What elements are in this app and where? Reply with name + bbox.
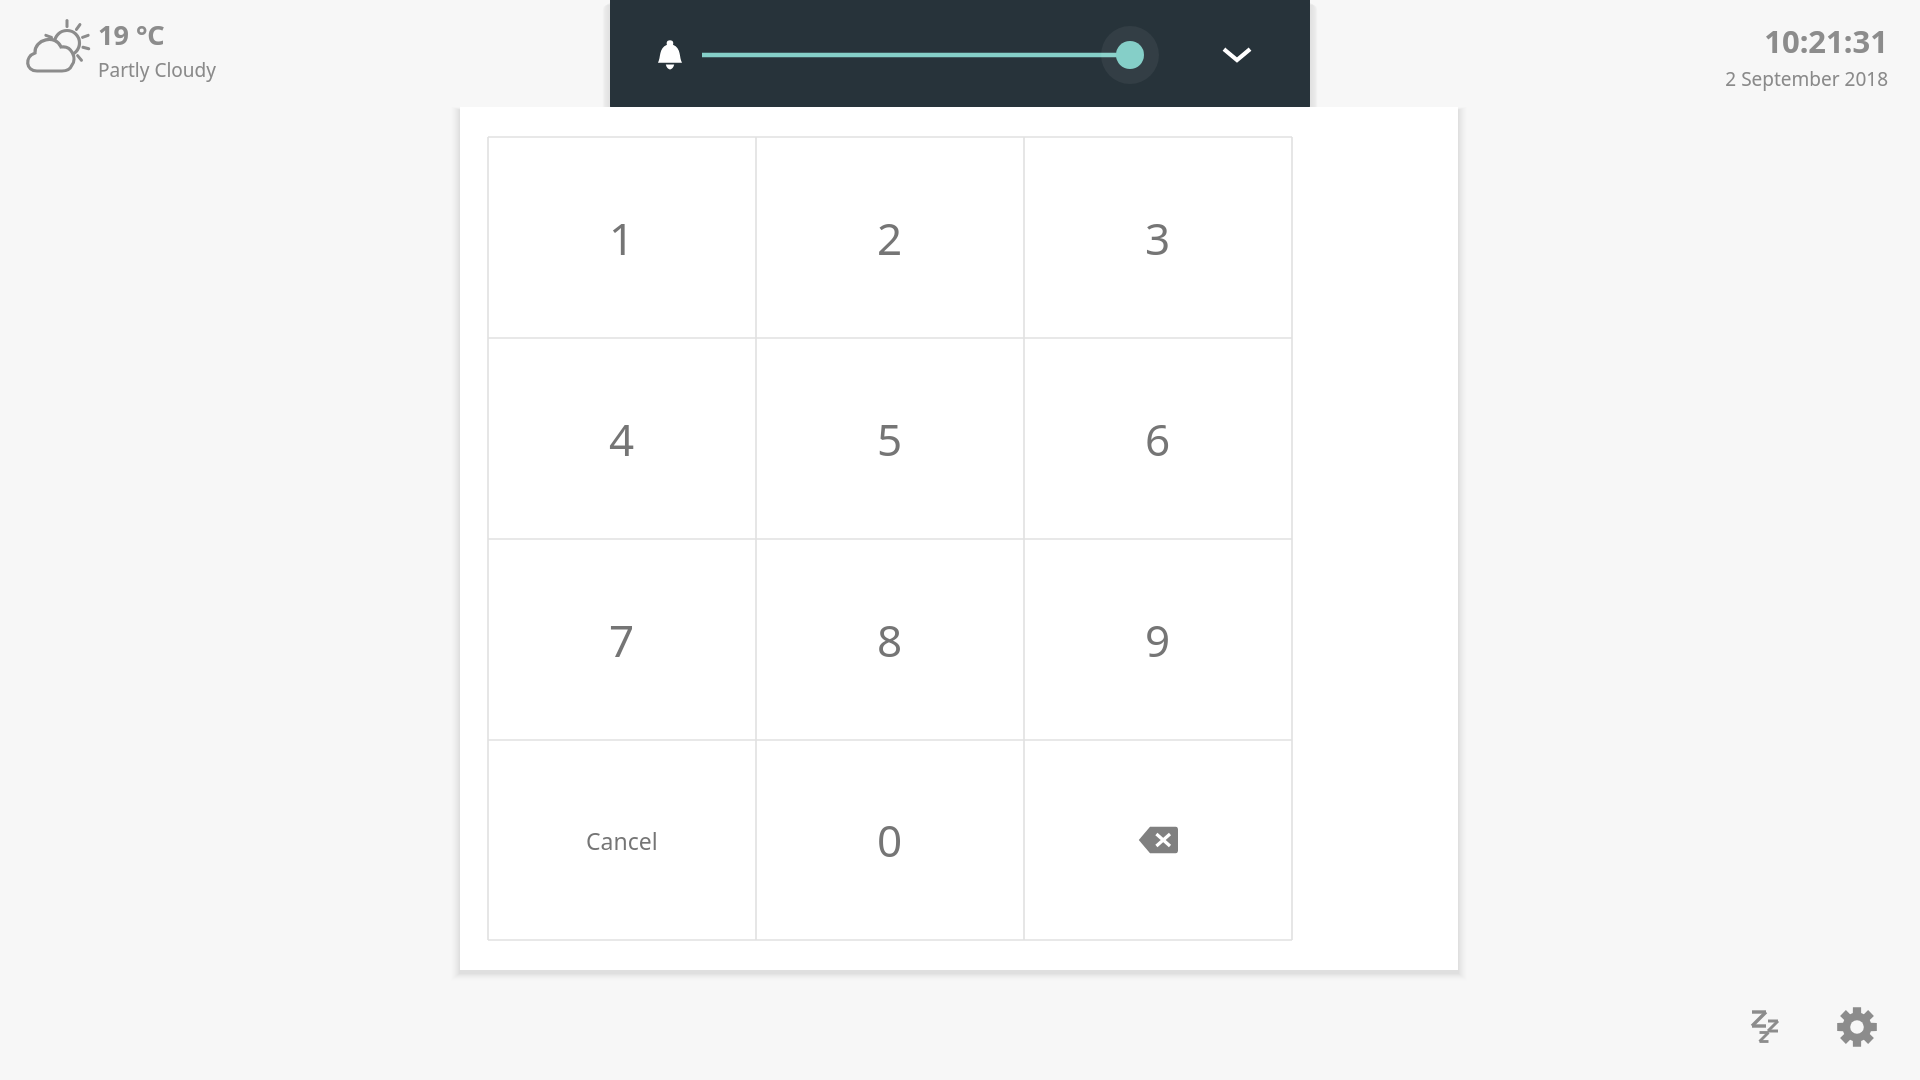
staticText: 6 xyxy=(1145,409,1171,469)
button[interactable]: 0 xyxy=(756,740,1024,940)
button[interactable]: Notifications xyxy=(642,27,698,83)
button[interactable]: 3 xyxy=(1024,137,1292,338)
staticText: 8 xyxy=(877,610,903,670)
button[interactable]: Backspace xyxy=(1024,740,1292,940)
staticText: 10:21:31 xyxy=(1764,20,1888,62)
staticText: 4 xyxy=(609,409,635,469)
button[interactable]: 1 xyxy=(488,137,756,338)
button[interactable]: 8 xyxy=(756,539,1024,740)
staticText: Cancel xyxy=(586,825,658,856)
button[interactable]: 2 xyxy=(756,137,1024,338)
staticText: 3 xyxy=(1145,208,1171,268)
button[interactable]: 4 xyxy=(488,338,756,539)
staticText: 19 °C xyxy=(98,16,165,53)
button[interactable]: 7 xyxy=(488,539,756,740)
button[interactable]: 10:21:31 xyxy=(1721,16,1892,92)
staticText: Partly Cloudy xyxy=(98,57,216,83)
button[interactable]: 19 °C xyxy=(18,14,220,85)
button[interactable]: 6 xyxy=(1024,338,1292,539)
staticText: 0 xyxy=(877,810,903,870)
staticText: 9 xyxy=(1145,610,1171,670)
button[interactable]: Sleep xyxy=(1736,996,1798,1058)
button[interactable]: Settings xyxy=(1826,996,1888,1058)
staticText: 5 xyxy=(877,409,903,469)
button[interactable]: Cancel xyxy=(488,740,756,940)
staticText: 2 xyxy=(877,208,903,268)
button[interactable]: 5 xyxy=(756,338,1024,539)
staticText: 2 September 2018 xyxy=(1725,66,1888,92)
button[interactable]: Expand xyxy=(1210,28,1264,82)
staticText: 7 xyxy=(609,610,635,670)
button[interactable]: 9 xyxy=(1024,539,1292,740)
staticText: 1 xyxy=(609,208,635,268)
button[interactable]: Brightness slider xyxy=(702,15,1172,95)
